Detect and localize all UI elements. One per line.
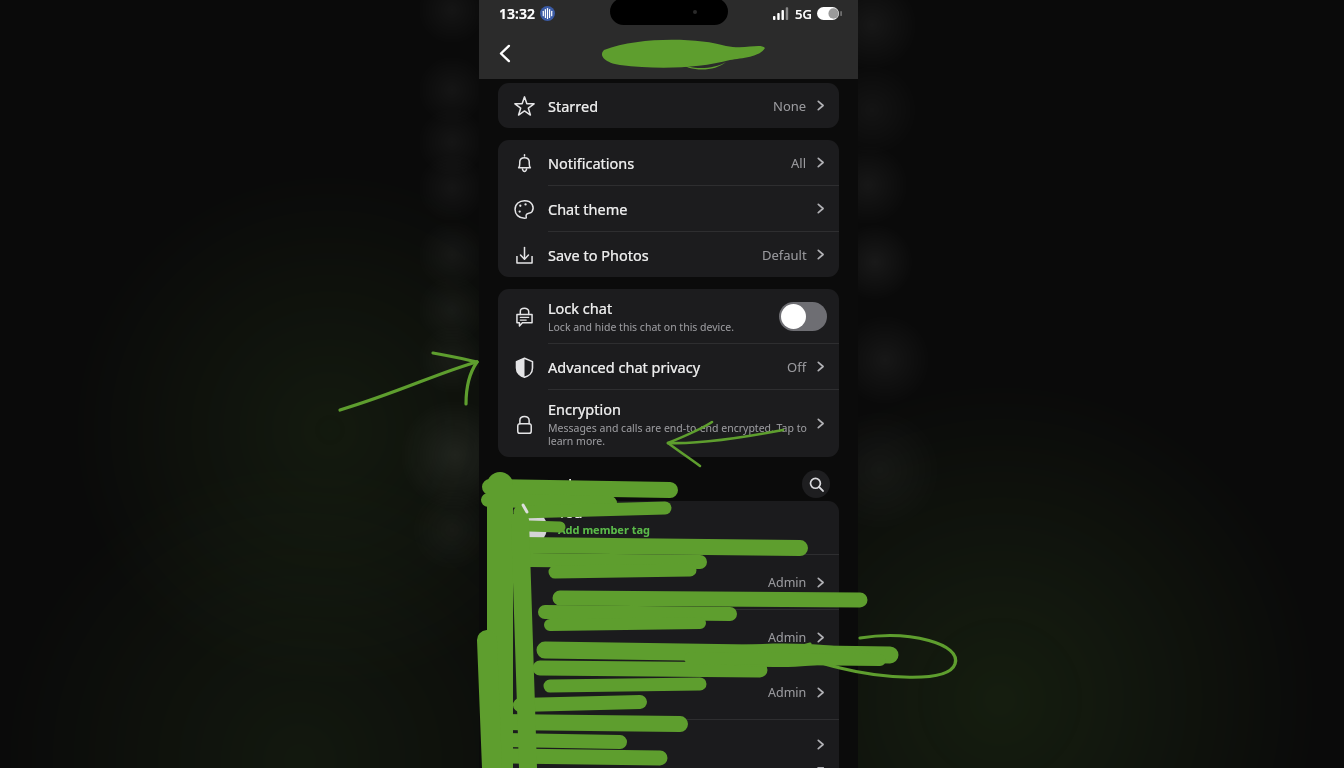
staticText: Urgent calls only xyxy=(558,537,645,552)
staticText: 5G xyxy=(795,5,812,23)
staticText: Starred xyxy=(548,96,599,116)
staticText: Lock chat xyxy=(548,298,613,318)
staticText: All xyxy=(791,154,807,172)
staticText: Admin xyxy=(768,684,807,701)
staticText: Default xyxy=(762,246,807,264)
staticText: Off xyxy=(787,358,807,376)
staticText: Chat theme xyxy=(548,199,628,219)
staticText: Admin xyxy=(768,629,807,646)
button[interactable]: Back xyxy=(483,31,527,75)
button[interactable]: Encryption xyxy=(498,390,839,457)
staticText: Encryption xyxy=(548,399,621,419)
button[interactable]: Starred xyxy=(498,83,839,128)
staticText: Save to Photos xyxy=(548,245,649,265)
button[interactable]: Lock chat xyxy=(498,289,839,343)
button[interactable]: Advanced chat privacy xyxy=(498,344,839,389)
button[interactable]: Admin xyxy=(498,610,839,664)
button[interactable]: Search members xyxy=(802,470,830,498)
button[interactable]: Notifications xyxy=(498,140,839,185)
staticText: 13:32 xyxy=(499,4,535,23)
button[interactable]: Admin xyxy=(498,555,839,609)
button[interactable]: Save to Photos xyxy=(498,232,839,277)
button[interactable]: Admin xyxy=(498,665,839,719)
staticText: Add member tag xyxy=(558,522,651,537)
button[interactable]: Lock chat toggle xyxy=(779,302,827,331)
button[interactable]: You xyxy=(498,501,839,554)
staticText: Admin xyxy=(768,574,807,591)
button[interactable]: Chat theme xyxy=(498,186,839,231)
staticText: Messages and calls are end-to-end encryp… xyxy=(548,421,814,448)
staticText: Lock and hide this chat on this device. xyxy=(548,320,735,334)
button[interactable] xyxy=(498,720,839,768)
staticText: Advanced chat privacy xyxy=(548,357,701,377)
staticText: None xyxy=(773,97,807,115)
staticText: 25 members xyxy=(512,474,599,494)
staticText: You xyxy=(558,503,583,522)
staticText: Notifications xyxy=(548,153,635,173)
